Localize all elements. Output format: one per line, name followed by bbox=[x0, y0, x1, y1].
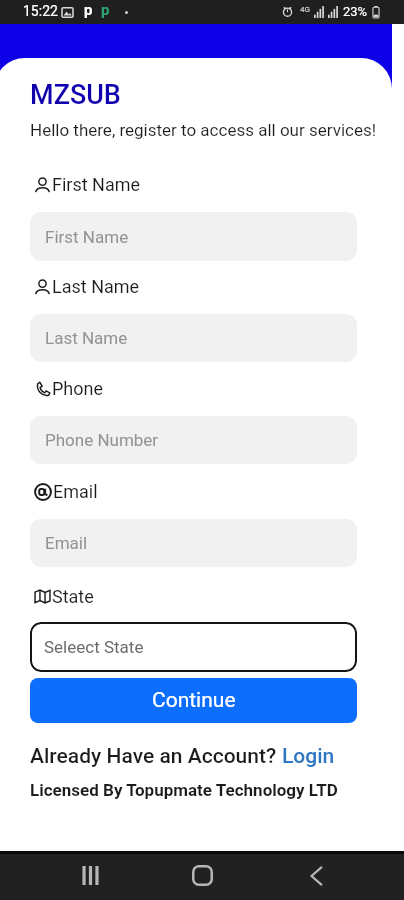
staticText: State bbox=[52, 586, 94, 607]
button[interactable]: Phone Number bbox=[30, 416, 357, 464]
staticText: Continue bbox=[152, 688, 236, 713]
staticText: Last Name bbox=[52, 276, 140, 297]
button[interactable]: Seleect State bbox=[30, 622, 357, 672]
staticText: p bbox=[84, 1, 93, 19]
button[interactable]: Email bbox=[30, 519, 357, 567]
button[interactable]: Back bbox=[292, 851, 340, 900]
staticText: Last Name bbox=[45, 328, 128, 348]
staticText: Phone Number bbox=[45, 430, 159, 450]
staticText: 23% bbox=[343, 4, 368, 19]
staticText: 15:22 bbox=[23, 3, 58, 19]
staticText: Email bbox=[45, 533, 88, 553]
staticText: Already Have an Account? bbox=[30, 744, 282, 769]
staticText: 4G bbox=[300, 5, 310, 14]
staticText: MZSUB bbox=[30, 79, 121, 111]
staticText: First Name bbox=[52, 174, 141, 195]
button[interactable]: Last Name bbox=[30, 314, 357, 362]
button[interactable]: Login bbox=[282, 744, 335, 769]
staticText: p bbox=[101, 1, 110, 19]
button[interactable]: Home bbox=[178, 851, 226, 900]
staticText: Seleect State bbox=[44, 637, 144, 657]
staticText: Phone bbox=[52, 378, 104, 399]
staticText: Email bbox=[53, 481, 98, 502]
button[interactable]: Continue bbox=[30, 678, 357, 723]
staticText: First Name bbox=[45, 227, 129, 247]
button[interactable]: Recent apps bbox=[66, 851, 114, 900]
staticText: Licensed By Topupmate Technology LTD bbox=[30, 780, 338, 800]
staticText: Hello there, register to access all our … bbox=[30, 120, 377, 140]
button[interactable]: First Name bbox=[30, 212, 357, 261]
